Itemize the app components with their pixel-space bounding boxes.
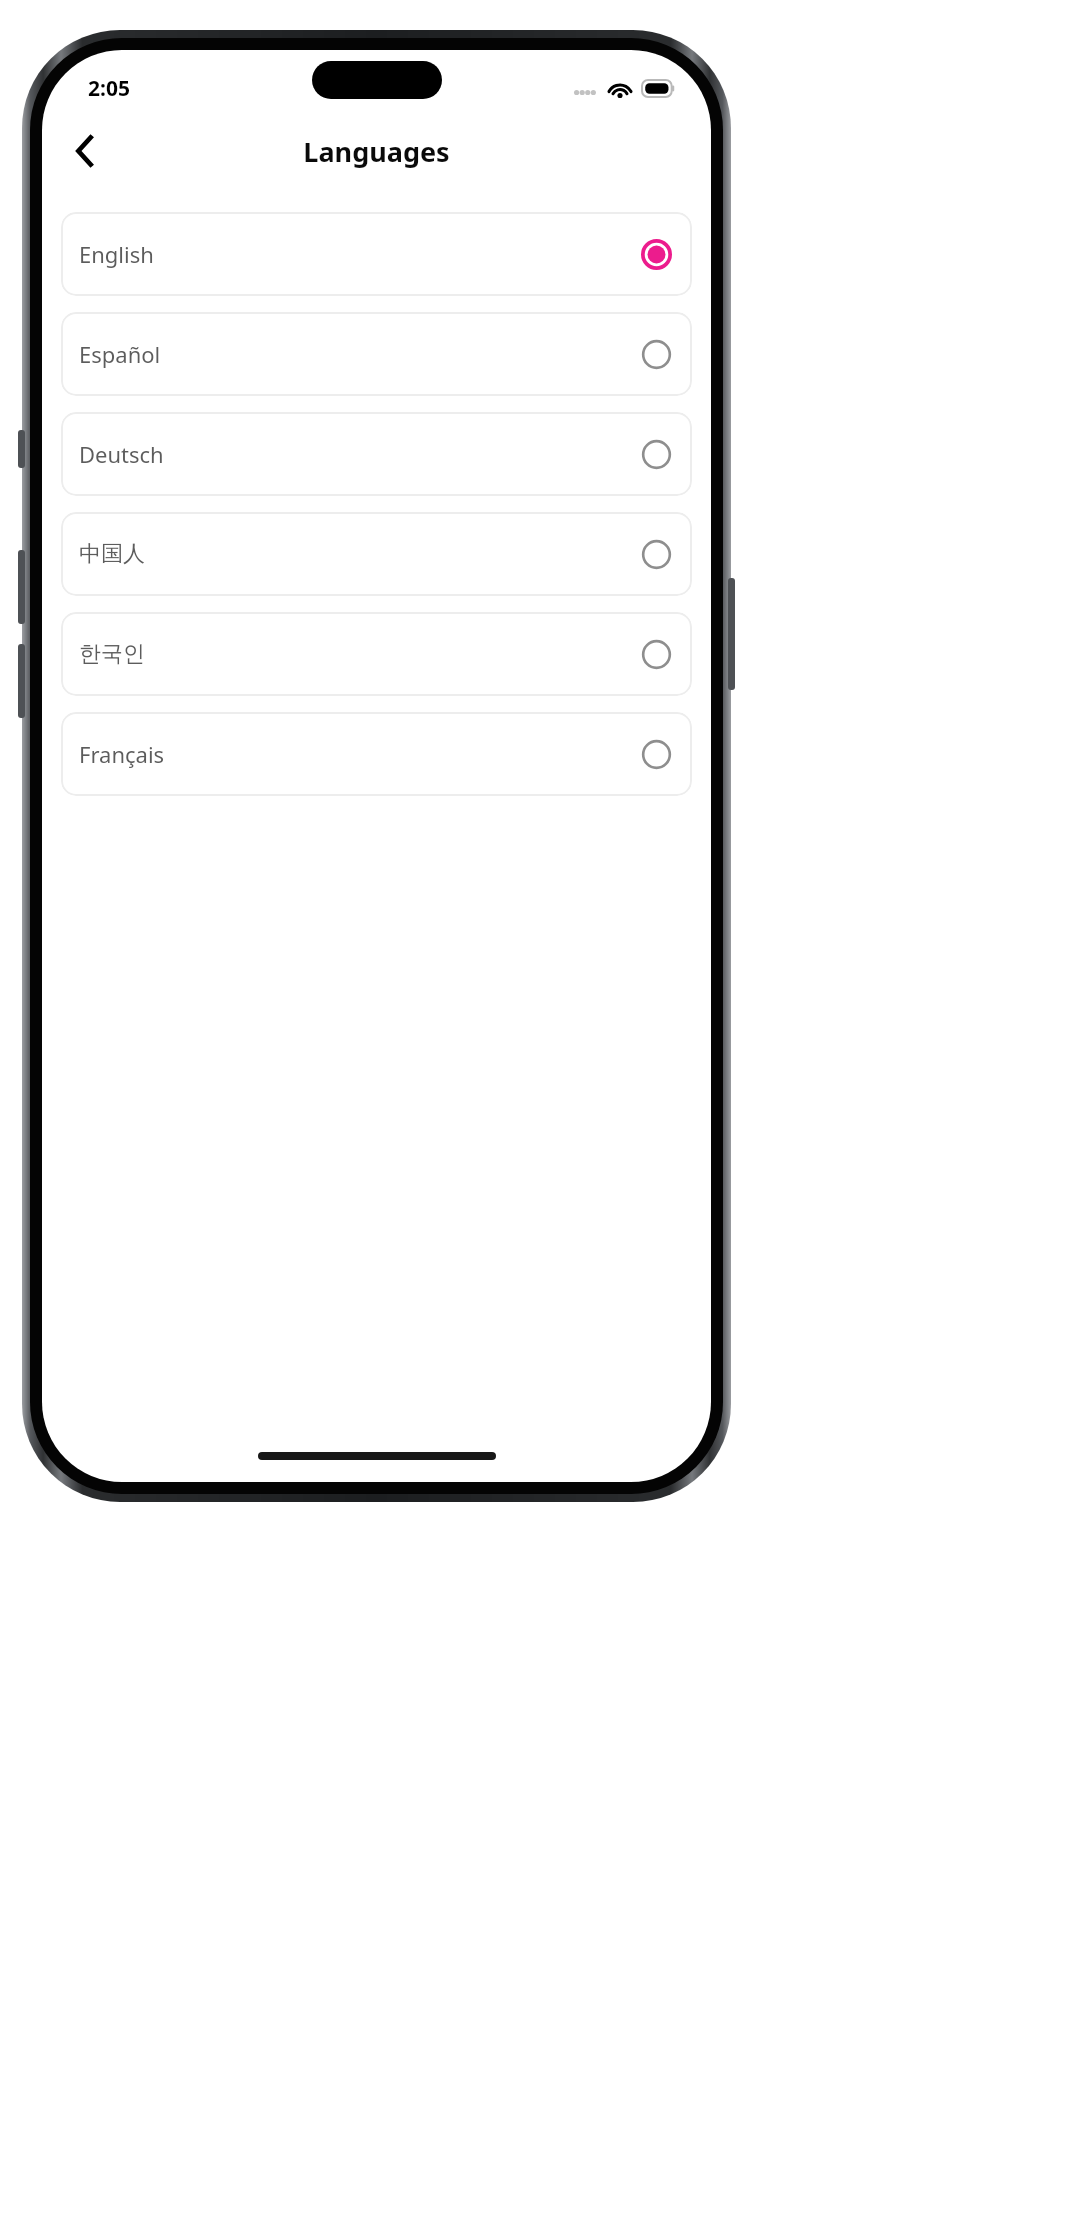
- staticText: Español: [79, 339, 641, 369]
- button[interactable]: 한국인: [61, 612, 692, 696]
- button[interactable]: English: [61, 212, 692, 296]
- staticText: Deutsch: [79, 439, 641, 469]
- staticText: 中国人: [79, 540, 641, 568]
- staticText: English: [79, 239, 641, 269]
- button[interactable]: Back: [56, 123, 112, 179]
- button[interactable]: Español: [61, 312, 692, 396]
- button[interactable]: Français: [61, 712, 692, 796]
- staticText: Français: [79, 739, 641, 769]
- staticText: 한국인: [79, 640, 641, 668]
- staticText: Languages: [42, 133, 711, 170]
- button[interactable]: 中国人: [61, 512, 692, 596]
- staticText: 2:05: [88, 74, 130, 103]
- button[interactable]: Deutsch: [61, 412, 692, 496]
